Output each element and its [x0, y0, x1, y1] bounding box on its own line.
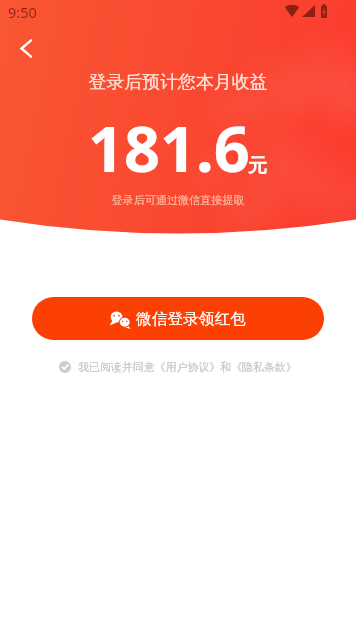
- staticText: 登录后预计您本月收益: [0, 71, 356, 94]
- staticText: 微信登录领红包: [136, 309, 246, 329]
- staticText: 登录后可通过微信直接提取: [0, 193, 356, 207]
- staticText: 我已阅读并同意《用户协议》和《隐私条款》: [78, 360, 297, 374]
- button[interactable]: Back: [8, 30, 44, 66]
- button[interactable]: 微信登录领红包: [32, 297, 324, 340]
- staticText: 181.6: [88, 105, 250, 191]
- button[interactable]: 我已阅读并同意《用户协议》和《隐私条款》: [0, 360, 356, 374]
- staticText: 元: [248, 154, 267, 178]
- staticText: 9:50: [8, 2, 37, 22]
